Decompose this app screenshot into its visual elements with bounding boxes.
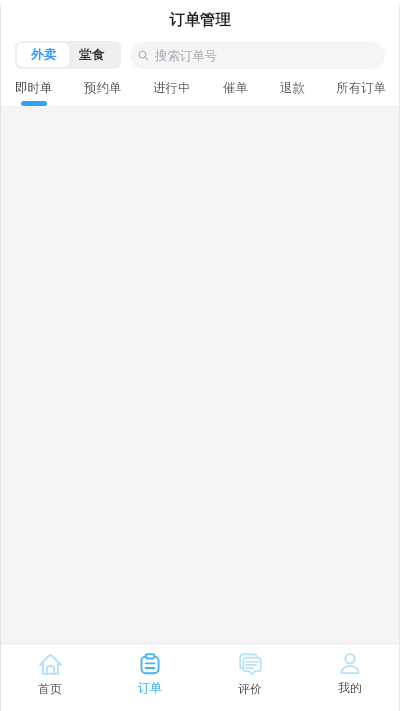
button[interactable]: Orders <box>100 645 200 711</box>
staticText: 堂食 <box>79 47 104 63</box>
staticText: 催单 <box>223 80 248 96</box>
button[interactable]: 即时单 <box>15 80 53 106</box>
button[interactable]: 所有订单 <box>336 80 386 106</box>
button[interactable]: 退款 <box>279 80 305 106</box>
staticText: 首页 <box>38 681 62 696</box>
button[interactable]: 进行中 <box>153 80 191 106</box>
button[interactable]: 堂食 <box>69 41 114 69</box>
staticText: 订单 <box>138 680 162 695</box>
button[interactable]: Profile <box>300 645 400 711</box>
staticText: 退款 <box>280 80 305 96</box>
staticText: 评价 <box>238 681 262 696</box>
staticText: 搜索订单号 <box>155 48 217 64</box>
staticText: 我的 <box>338 680 362 695</box>
staticText: 外卖 <box>31 47 56 63</box>
button[interactable]: 催单 <box>222 80 248 106</box>
button[interactable]: Reviews <box>200 645 300 711</box>
staticText: 预约单 <box>84 80 122 96</box>
staticText: 订单管理 <box>169 10 231 29</box>
button[interactable]: 外卖 <box>17 43 69 67</box>
staticText: 所有订单 <box>336 80 386 96</box>
button[interactable]: 预约单 <box>84 80 122 106</box>
button[interactable]: Home <box>0 645 100 711</box>
staticText: 进行中 <box>153 80 191 96</box>
staticText: 即时单 <box>15 80 53 96</box>
button[interactable]: 搜索订单号 <box>130 42 385 69</box>
